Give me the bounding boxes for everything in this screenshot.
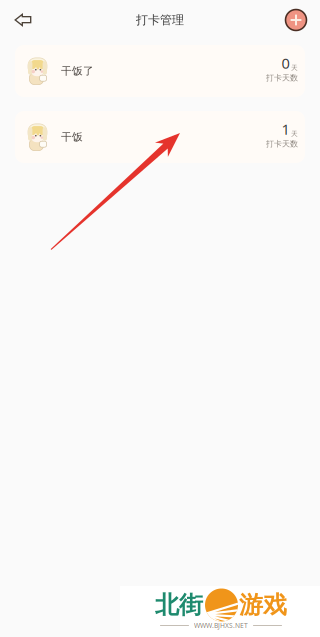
staticText: 打卡天数 bbox=[266, 139, 298, 149]
staticText: 0 bbox=[281, 53, 289, 73]
staticText: 打卡天数 bbox=[266, 73, 298, 83]
staticText: WWW.BJHXS.NET bbox=[194, 621, 248, 630]
staticText: 1 bbox=[281, 119, 289, 139]
staticText: 打卡管理 bbox=[136, 13, 184, 27]
button[interactable]: 干饭了 bbox=[15, 45, 305, 97]
staticText: 天 bbox=[291, 130, 298, 138]
button[interactable]: Add bbox=[281, 5, 311, 35]
button[interactable]: 干饭 bbox=[15, 111, 305, 163]
button[interactable]: Back bbox=[8, 5, 38, 35]
staticText: 北街 bbox=[155, 590, 203, 620]
staticText: 天 bbox=[291, 64, 298, 72]
staticText: 干饭 bbox=[61, 130, 83, 143]
staticText: 干饭了 bbox=[61, 64, 94, 77]
staticText: 游戏 bbox=[239, 590, 287, 620]
